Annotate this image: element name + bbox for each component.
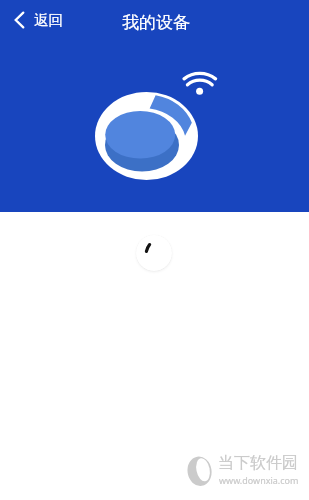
staticText: www.downxia.com: [219, 474, 299, 486]
button[interactable]: 返回: [8, 6, 70, 34]
staticText: 我的设备: [122, 12, 190, 33]
button[interactable]: Device status: [136, 235, 172, 271]
staticText: 当下软件园: [218, 453, 298, 473]
staticText: 返回: [34, 11, 63, 29]
